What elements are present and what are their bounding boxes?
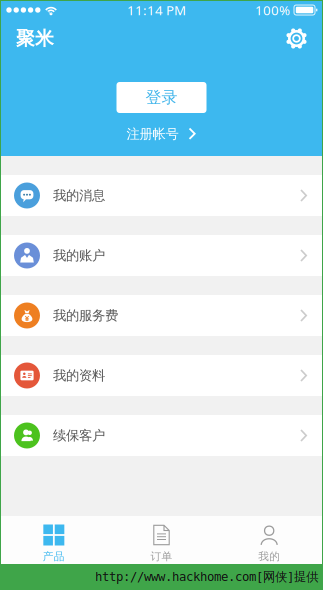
staticText: http://www.hackhome.com[网侠]提供: [95, 569, 318, 585]
button[interactable]: 注册帐号: [126, 127, 196, 141]
button[interactable]: 续保客户: [0, 415, 323, 456]
staticText: 我的消息: [53, 187, 105, 204]
staticText: 登录: [145, 88, 177, 107]
button[interactable]: 我的消息: [0, 175, 323, 216]
staticText: 续保客户: [53, 427, 105, 444]
staticText: 11:14 PM: [127, 1, 186, 19]
staticText: 注册帐号: [126, 126, 178, 142]
staticText: 订单: [150, 550, 172, 563]
staticText: 100%: [255, 1, 290, 19]
button[interactable]: 订单: [108, 516, 215, 564]
button[interactable]: 产品: [0, 516, 108, 564]
staticText: 我的账户: [53, 247, 105, 264]
staticText: 我的资料: [53, 367, 105, 384]
staticText: 产品: [43, 550, 65, 563]
button[interactable]: 我的: [215, 516, 323, 564]
staticText: 我的服务费: [53, 307, 118, 324]
staticText: 聚米: [16, 27, 54, 50]
button[interactable]: Settings: [286, 28, 323, 49]
button[interactable]: 我的服务费: [0, 295, 323, 336]
button[interactable]: 我的资料: [0, 355, 323, 396]
button[interactable]: 我的账户: [0, 235, 323, 276]
staticText: 我的: [258, 550, 280, 563]
button[interactable]: 登录: [116, 82, 206, 113]
